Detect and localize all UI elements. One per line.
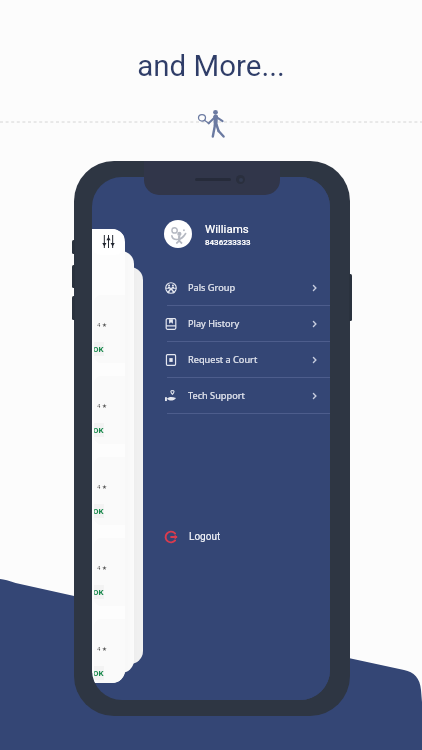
- button[interactable]: Play History: [143, 306, 330, 342]
- staticText: OK: [94, 345, 104, 354]
- staticText: Request a Court: [188, 353, 258, 366]
- staticText: Logout: [189, 531, 221, 543]
- staticText: 4 ★: [97, 321, 108, 328]
- staticText: 4 ★: [97, 564, 108, 571]
- staticText: Pals Group: [188, 281, 236, 294]
- staticText: OK: [94, 669, 104, 678]
- staticText: Play History: [188, 317, 240, 330]
- button[interactable]: Pals Group: [143, 270, 330, 306]
- staticText: 4 ★: [97, 645, 108, 652]
- staticText: OK: [94, 588, 104, 597]
- staticText: 4 ★: [97, 402, 108, 409]
- staticText: OK: [94, 426, 104, 435]
- staticText: Tech Support: [188, 389, 245, 402]
- button[interactable]: Request a Court: [143, 342, 330, 378]
- staticText: 8436233333: [205, 238, 251, 247]
- staticText: 4 ★: [97, 483, 108, 490]
- staticText: Williams: [205, 222, 249, 235]
- staticText: OK: [94, 507, 104, 516]
- staticText: and More...: [0, 49, 422, 84]
- button[interactable]: Logout: [165, 531, 221, 543]
- button[interactable]: Tech Support: [143, 378, 330, 414]
